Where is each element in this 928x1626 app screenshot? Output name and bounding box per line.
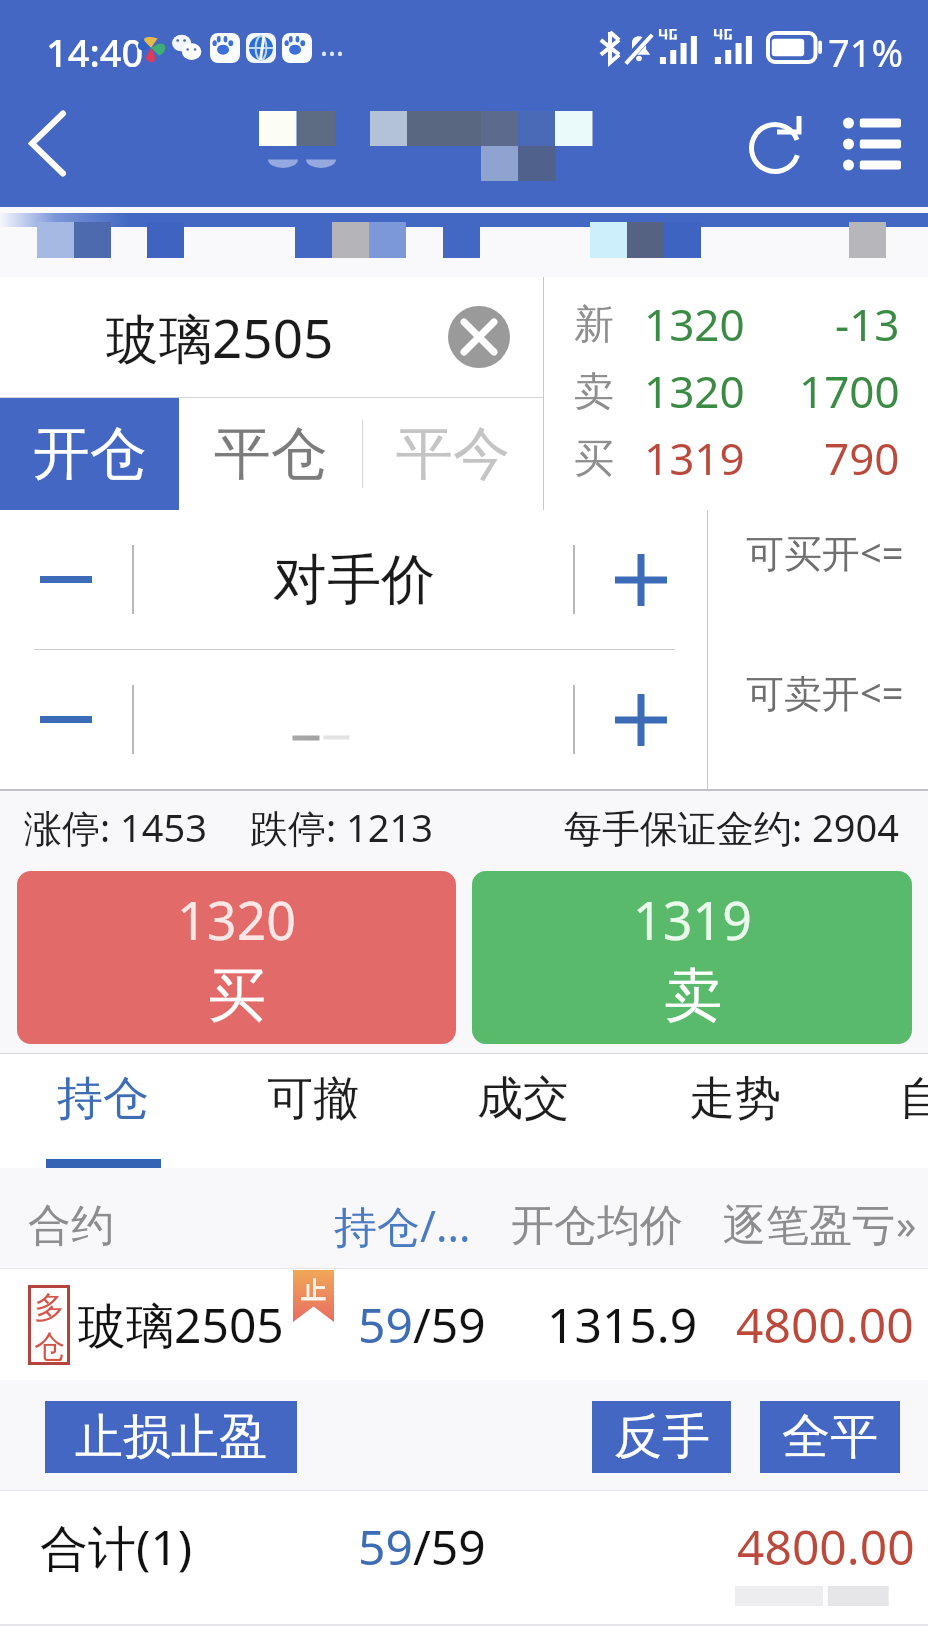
button[interactable]: 可卖开<= xyxy=(746,666,904,718)
staticText: 4800.00 xyxy=(736,1292,914,1357)
staticText: 59 xyxy=(358,1292,413,1357)
staticText: 14:40 xyxy=(46,26,144,78)
button[interactable]: Decrease xyxy=(0,650,132,789)
staticText: 全平 xyxy=(782,1407,878,1467)
button[interactable]: 平仓 xyxy=(179,398,362,510)
staticText: 1320 xyxy=(644,294,745,354)
button[interactable]: Increase xyxy=(575,510,707,649)
staticText: 卖 xyxy=(574,366,614,416)
staticText: 反手 xyxy=(614,1407,710,1467)
staticText: 新 xyxy=(574,299,614,349)
staticText: 可买开<= xyxy=(746,526,904,578)
staticText: /59 xyxy=(413,1292,486,1357)
button[interactable]: Decrease xyxy=(0,510,132,649)
staticText: 自选 xyxy=(899,1070,928,1128)
button[interactable]: Back xyxy=(0,90,100,207)
staticText: 止损止盈 xyxy=(75,1407,267,1467)
staticText: 持仓 xyxy=(57,1070,149,1128)
staticText: 开仓 xyxy=(33,418,147,490)
staticText: 合计(1) xyxy=(40,1514,193,1580)
staticText: 逐笔盈亏 xyxy=(723,1199,895,1253)
staticText: 多 xyxy=(34,1288,65,1327)
staticText: 玻璃2505 xyxy=(78,1292,284,1358)
staticText: 仓 xyxy=(34,1327,65,1362)
staticText: 每手保证金约: 2904 xyxy=(564,801,900,853)
button[interactable]: 全平 xyxy=(760,1401,900,1473)
staticText: 1320 xyxy=(177,884,296,955)
staticText: 平仓 xyxy=(214,418,328,490)
staticText: 合约 xyxy=(28,1199,114,1253)
staticText: » xyxy=(896,1196,917,1250)
staticText: 1319 xyxy=(644,428,745,488)
button[interactable]: Menu xyxy=(832,105,912,185)
staticText: 可撤 xyxy=(267,1070,359,1128)
button[interactable]: 平今 xyxy=(363,398,543,510)
button[interactable]: 反手 xyxy=(592,1401,731,1473)
button[interactable]: 持仓/... xyxy=(334,1196,471,1255)
button[interactable]: 玻璃2505 xyxy=(0,277,543,397)
staticText: 平今 xyxy=(396,418,510,490)
button[interactable]: 可撤 xyxy=(208,1054,418,1168)
staticText: 持仓/... xyxy=(334,1196,471,1255)
button[interactable]: 可买开<= xyxy=(746,526,904,578)
staticText: 涨停: 1453 xyxy=(24,801,208,853)
button[interactable]: 逐笔盈亏 xyxy=(723,1199,895,1253)
button[interactable]: 止损止盈 xyxy=(45,1401,297,1473)
staticText: 1315.9 xyxy=(547,1292,698,1357)
button[interactable]: 成交 xyxy=(418,1054,628,1168)
staticText: 对手价 xyxy=(273,546,435,614)
staticText: 开仓均价 xyxy=(511,1199,683,1253)
button[interactable] xyxy=(134,650,573,789)
staticText: 走势 xyxy=(689,1070,781,1128)
staticText: 跌停: 1213 xyxy=(250,801,434,853)
button[interactable]: Clear xyxy=(448,306,510,368)
staticText: 买 xyxy=(208,959,266,1032)
staticText: 790 xyxy=(824,428,900,488)
staticText: 卖 xyxy=(664,959,722,1032)
button[interactable]: 1319 xyxy=(472,871,912,1044)
staticText: -13 xyxy=(835,294,900,354)
staticText: 买 xyxy=(574,433,614,483)
button[interactable]: 走势 xyxy=(630,1054,840,1168)
button[interactable]: 持仓 xyxy=(0,1054,208,1168)
staticText: 1320 xyxy=(644,361,745,421)
staticText: 玻璃2505 xyxy=(106,301,334,373)
button[interactable]: 自选 xyxy=(840,1054,928,1168)
staticText: 可卖开<= xyxy=(746,666,904,718)
button[interactable]: 多 xyxy=(0,1269,928,1380)
button[interactable]: 开仓 xyxy=(0,398,179,510)
button[interactable]: Increase xyxy=(575,650,707,789)
button[interactable]: 对手价 xyxy=(134,510,573,649)
staticText: 59 xyxy=(358,1514,413,1579)
staticText: 71% xyxy=(828,26,904,78)
button[interactable]: 1320 xyxy=(17,871,456,1044)
staticText: 1319 xyxy=(633,884,752,955)
staticText: ··· xyxy=(320,33,345,74)
staticText: 4800.00 xyxy=(737,1514,915,1579)
button[interactable]: Refresh xyxy=(739,112,811,184)
staticText: /59 xyxy=(413,1514,486,1579)
button[interactable]: 开仓均价 xyxy=(511,1199,683,1253)
staticText: 成交 xyxy=(477,1070,569,1128)
staticText: 1700 xyxy=(799,361,900,421)
